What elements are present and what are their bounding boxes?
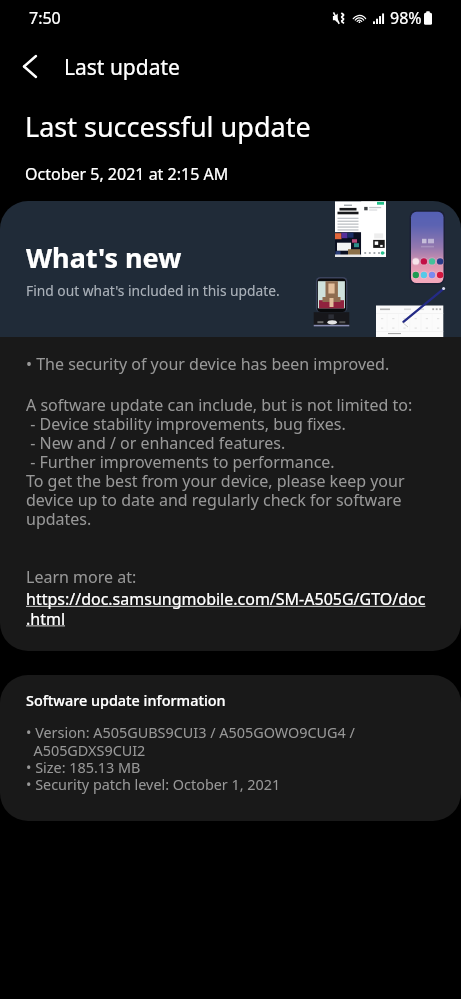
staticText: Last successful update [25,108,311,145]
staticText: Find out what's included in this update. [26,281,280,300]
staticText: October 5, 2021 at 2:15 AM [25,163,229,185]
staticText: Last update [64,53,180,82]
button[interactable]: What's new [0,201,461,337]
staticText: Software update information [26,691,226,711]
button[interactable]: https://doc.samsungmobile.com/SM-A505G/G… [26,588,426,629]
staticText: • The security of your device has been i… [26,353,390,375]
button[interactable]: Back [0,36,64,92]
staticText: A software update can include, but is no… [26,394,447,530]
staticText: • Version: A505GUBS9CUI3 / A505GOWO9CUG4… [26,723,355,794]
staticText: What's new [26,239,182,276]
staticText: 7:50 [29,7,61,29]
staticText: Learn more at: [26,566,137,588]
staticText: 98% [390,7,422,29]
